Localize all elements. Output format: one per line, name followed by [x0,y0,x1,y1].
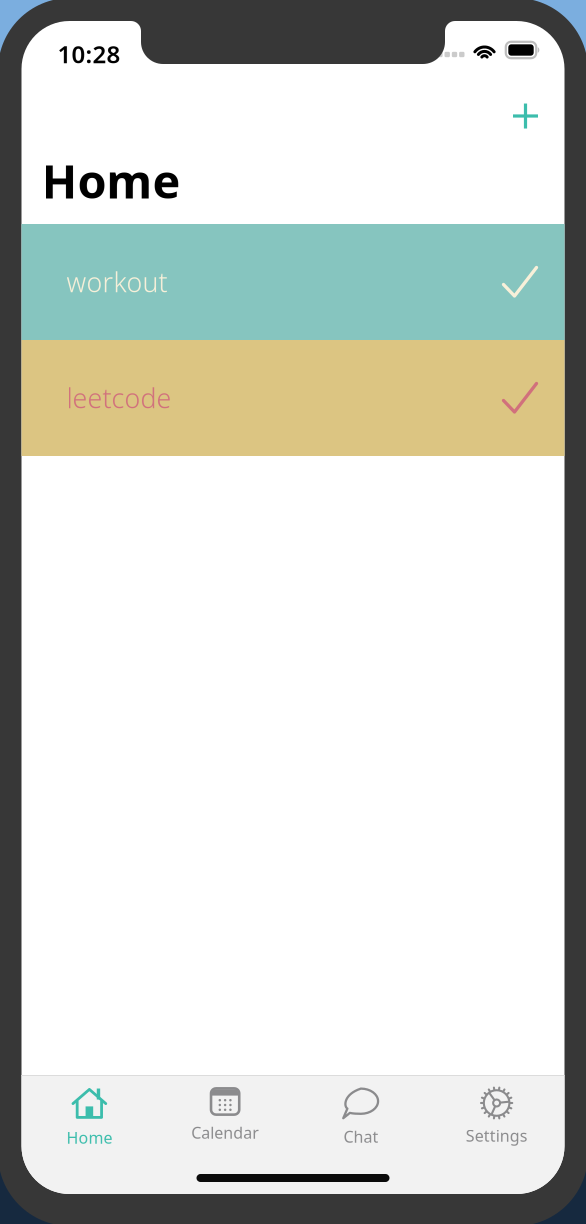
button[interactable]: Calendar [157,1076,293,1161]
staticText: 10:28 [57,38,120,70]
button[interactable]: Chat [293,1076,429,1161]
button[interactable]: Add item [501,92,549,140]
button[interactable]: leetcode [21,340,564,456]
staticText: Settings [466,1125,528,1146]
staticText: Calendar [191,1122,259,1143]
button[interactable]: workout [21,224,564,340]
button[interactable]: Home [21,1076,157,1161]
staticText: leetcode [66,380,171,416]
staticText: Home [66,1127,112,1148]
staticText: workout [66,264,167,300]
button[interactable]: Settings [429,1076,565,1161]
staticText: Home [41,149,180,211]
staticText: Chat [343,1126,378,1147]
